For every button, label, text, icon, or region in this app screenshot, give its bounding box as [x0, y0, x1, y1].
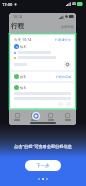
staticText: 快车 [20, 45, 27, 49]
staticText: 17:00 [2, 2, 13, 7]
button[interactable]: Trips [25, 113, 42, 121]
staticText: 下一步 [36, 163, 50, 169]
staticText: 点击"行程"可查看全部行程信息 [14, 144, 72, 150]
staticText: 10:14 [13, 14, 22, 19]
button[interactable]: Profile [59, 113, 76, 121]
staticText: 全部行程 [61, 25, 74, 29]
staticText: 快车 [20, 86, 27, 90]
staticText: 4G [72, 2, 76, 6]
button[interactable]: Home [9, 113, 25, 121]
button[interactable]: Call driver [64, 61, 71, 68]
button[interactable]: Messages [42, 113, 59, 121]
button[interactable]: More [66, 102, 71, 106]
staticText: 行程进行中 [55, 38, 71, 42]
staticText: 拼车 [20, 75, 27, 79]
button[interactable]: 快车 [11, 83, 74, 108]
button[interactable]: Rebook [58, 102, 63, 106]
staticText: 行程 [11, 22, 24, 30]
button[interactable]: 下一步 [25, 160, 61, 171]
staticText: 今天 10:14 [14, 37, 32, 42]
button[interactable]: 拼车 [11, 72, 74, 81]
staticText: 行程已完成 [56, 75, 71, 79]
button[interactable]: 今天 10:14 [11, 35, 74, 70]
